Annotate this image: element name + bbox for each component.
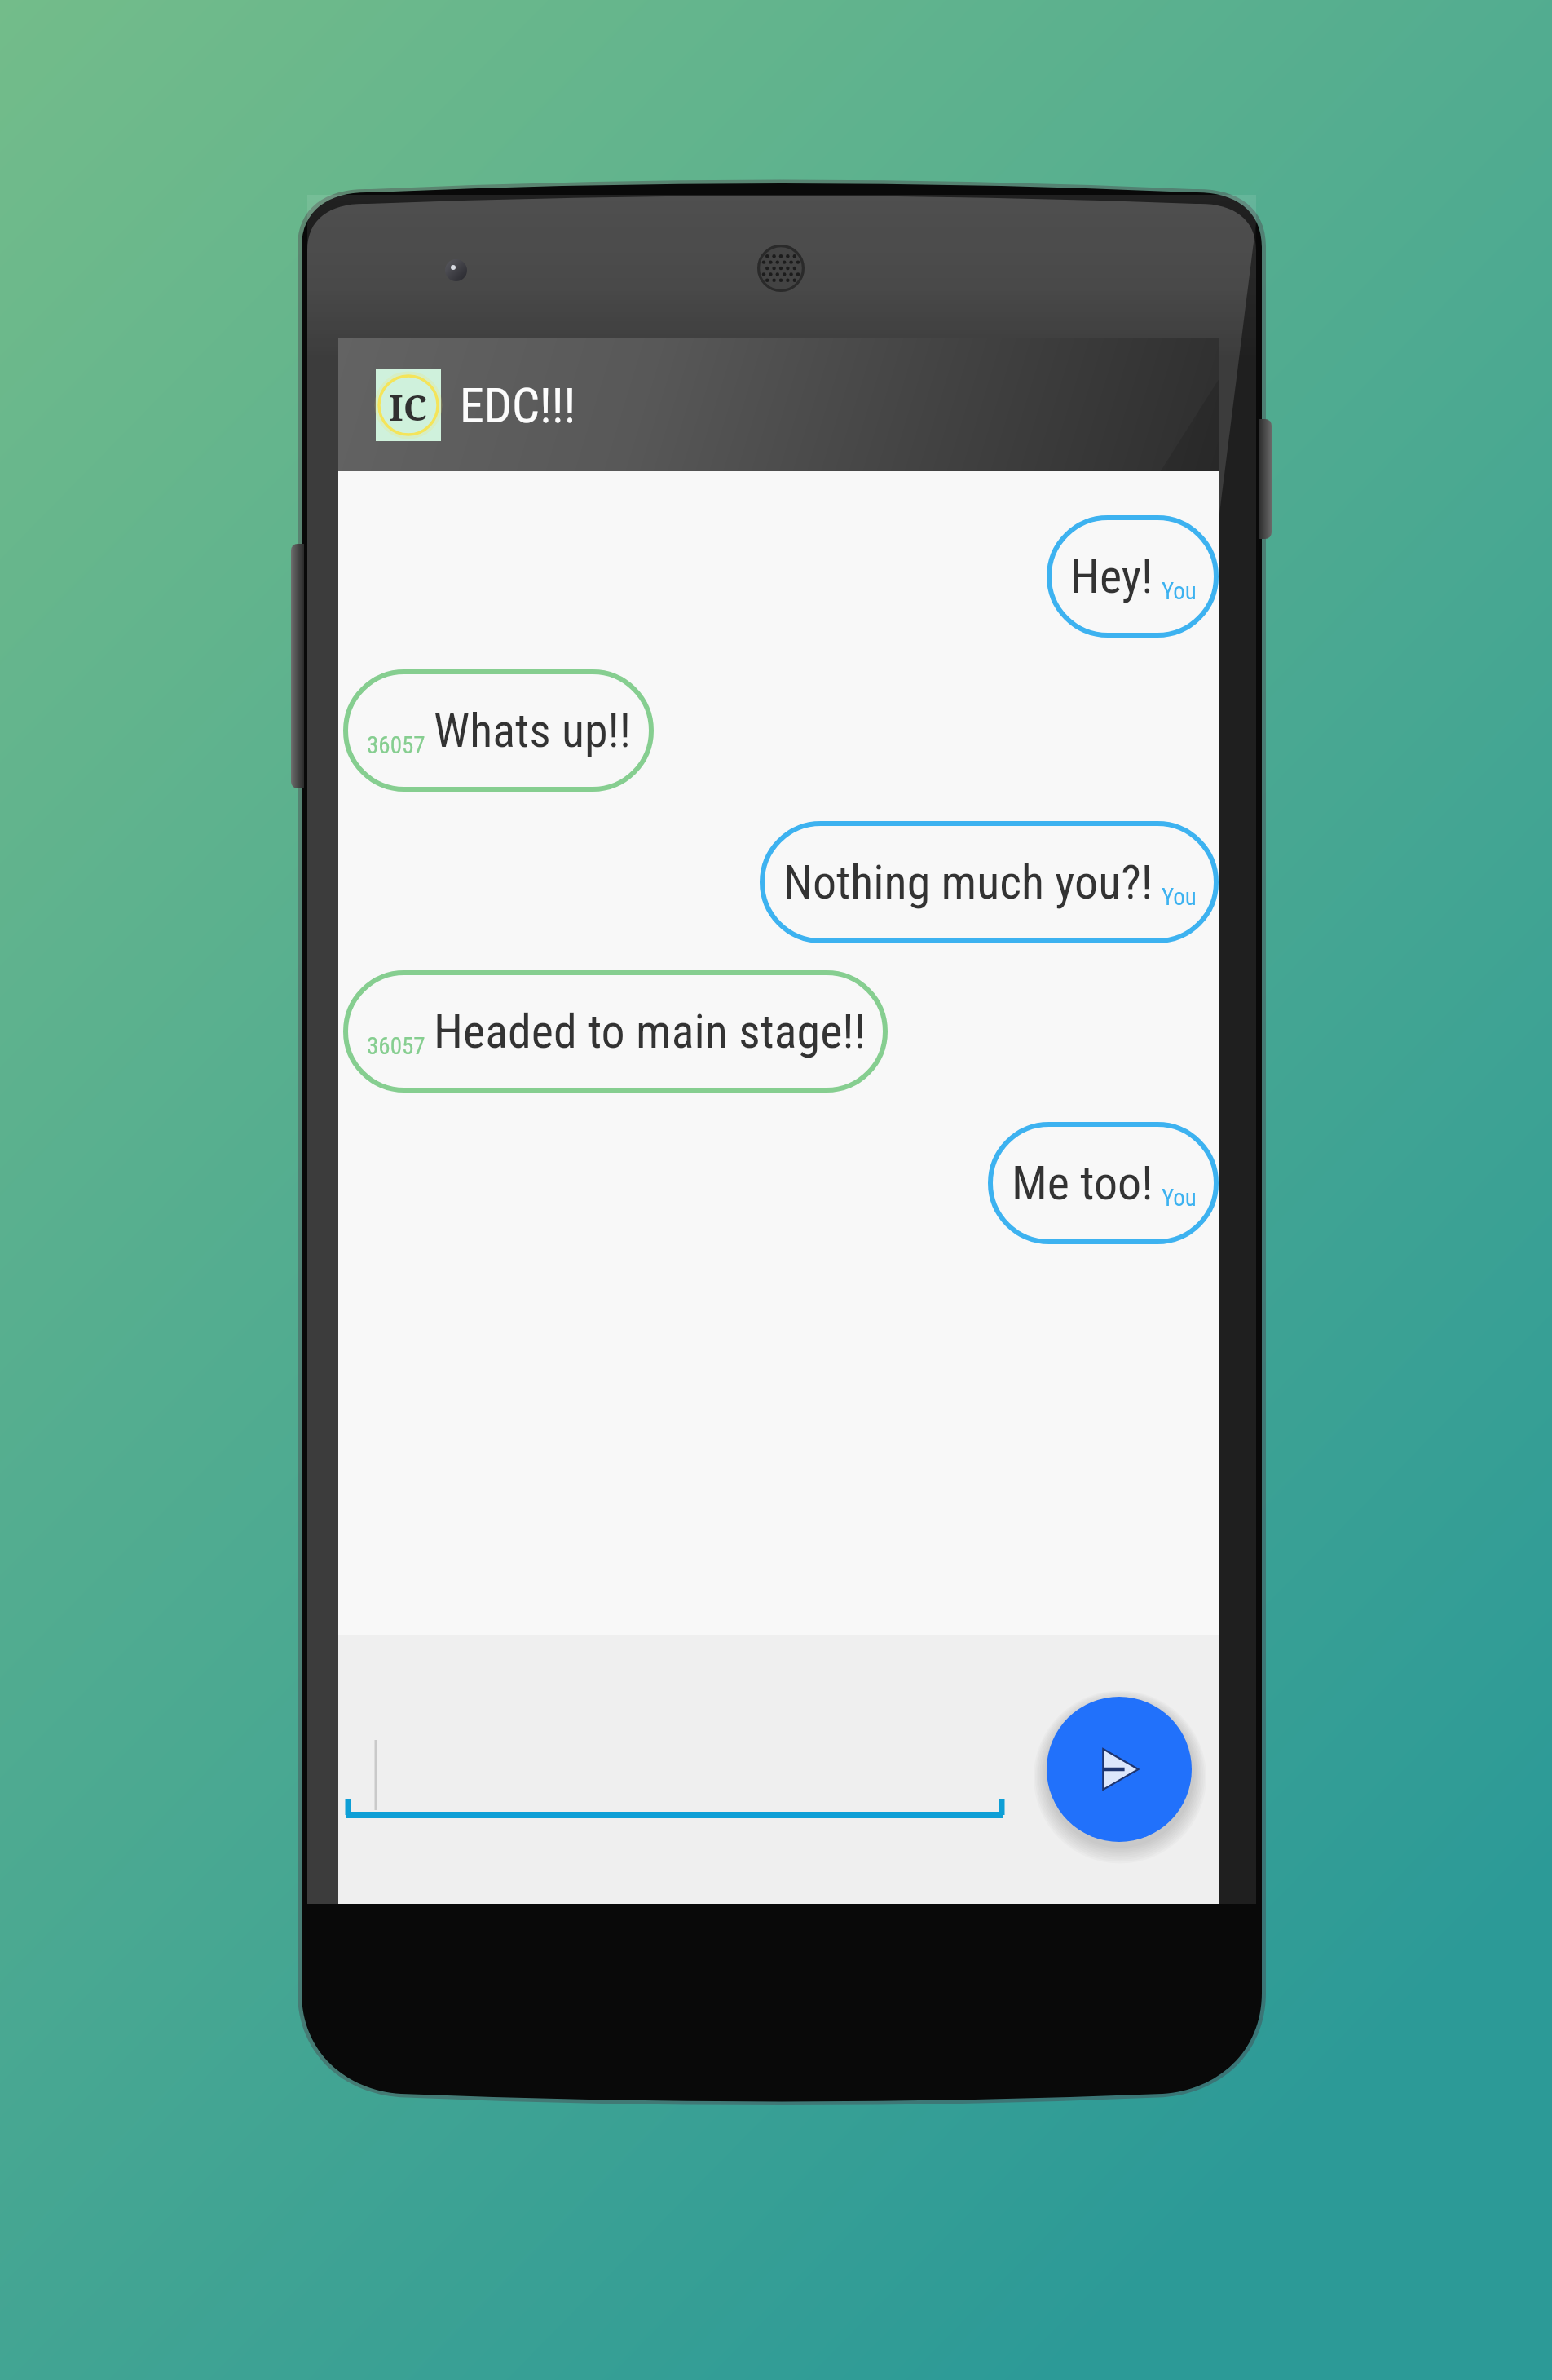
button[interactable]: Hey! bbox=[1047, 515, 1219, 638]
button[interactable]: Send bbox=[1047, 1697, 1192, 1842]
button[interactable]: Me too! bbox=[988, 1122, 1219, 1244]
staticText: Me too! bbox=[1012, 1155, 1153, 1211]
staticText: Whats up!! bbox=[434, 703, 632, 758]
staticText: You bbox=[1162, 1184, 1197, 1212]
staticText: You bbox=[1162, 883, 1197, 911]
button[interactable]: 36057 bbox=[343, 669, 654, 792]
staticText: Nothing much you?! bbox=[783, 854, 1153, 910]
staticText: EDC!!! bbox=[460, 377, 576, 434]
button[interactable]: IC bbox=[338, 338, 1219, 471]
staticText: 36057 bbox=[367, 731, 425, 759]
staticText: IC bbox=[389, 382, 428, 431]
staticText: 36057 bbox=[367, 1032, 425, 1060]
button[interactable]: 36057 bbox=[343, 970, 888, 1093]
staticText: Headed to main stage!! bbox=[434, 1004, 866, 1059]
staticText: Hey! bbox=[1070, 549, 1153, 604]
staticText: You bbox=[1162, 577, 1197, 605]
button[interactable]: Nothing much you?! bbox=[760, 821, 1219, 943]
